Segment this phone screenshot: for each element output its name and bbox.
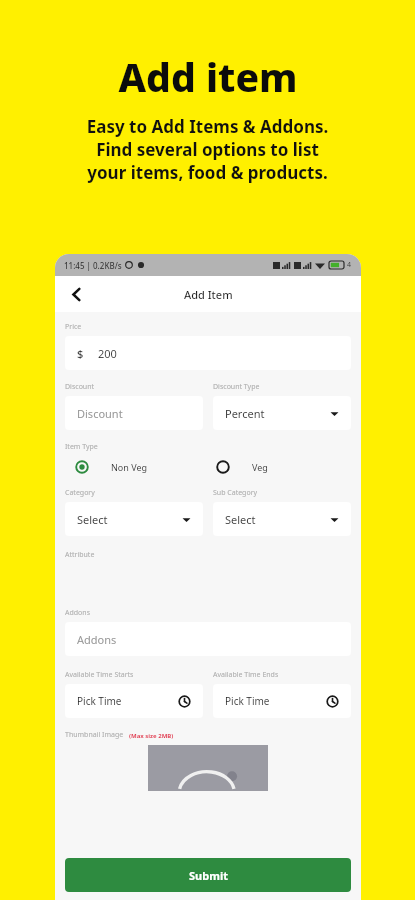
staticText: Select bbox=[225, 512, 256, 527]
button[interactable]: Pick Time bbox=[65, 684, 203, 718]
button[interactable]: $ bbox=[65, 336, 351, 370]
staticText: Submit bbox=[189, 868, 228, 883]
button[interactable]: Back bbox=[62, 280, 90, 308]
staticText: 4 bbox=[347, 260, 352, 270]
button[interactable]: Select bbox=[213, 502, 351, 536]
staticText: Pick Time bbox=[77, 694, 122, 708]
button[interactable]: Select bbox=[65, 502, 203, 536]
staticText: Percent bbox=[225, 406, 265, 421]
button[interactable]: Pick thumbnail image bbox=[148, 745, 268, 791]
button[interactable]: Addons bbox=[65, 622, 351, 656]
staticText: Discount Type bbox=[213, 382, 260, 392]
staticText: Select bbox=[77, 512, 108, 527]
staticText: Pick Time bbox=[225, 694, 270, 708]
staticText: Add item bbox=[118, 50, 298, 103]
staticText: $ bbox=[77, 346, 84, 361]
button[interactable]: Pick Time bbox=[213, 684, 351, 718]
staticText: Available Time Ends bbox=[213, 670, 279, 680]
staticText: 200 bbox=[98, 346, 117, 361]
button[interactable]: Submit bbox=[65, 858, 351, 892]
staticText: Thumbnail Image bbox=[65, 730, 124, 740]
staticText: Veg bbox=[252, 461, 268, 473]
button[interactable]: Percent bbox=[213, 396, 351, 430]
staticText: Addons bbox=[77, 632, 117, 647]
staticText: Available Time Starts bbox=[65, 670, 134, 680]
button[interactable]: Discount bbox=[65, 396, 203, 430]
button[interactable]: Veg bbox=[208, 460, 351, 474]
staticText: 11:45 | 0.2KB/s bbox=[64, 260, 122, 271]
staticText: Non Veg bbox=[111, 461, 148, 473]
staticText: Item Type bbox=[65, 442, 98, 452]
staticText: Easy to Add Items & Addons. Find several… bbox=[0, 115, 415, 184]
staticText: Discount bbox=[65, 382, 95, 392]
staticText: Attribute bbox=[65, 550, 95, 560]
staticText: Category bbox=[65, 488, 95, 498]
button[interactable]: Non Veg bbox=[65, 460, 208, 474]
staticText: Discount bbox=[77, 406, 123, 421]
staticText: (Max size 2MB) bbox=[129, 732, 174, 740]
staticText: Add Item bbox=[184, 287, 233, 302]
staticText: Addons bbox=[65, 608, 90, 618]
staticText: Price bbox=[65, 322, 82, 332]
staticText: Sub Category bbox=[213, 488, 258, 498]
